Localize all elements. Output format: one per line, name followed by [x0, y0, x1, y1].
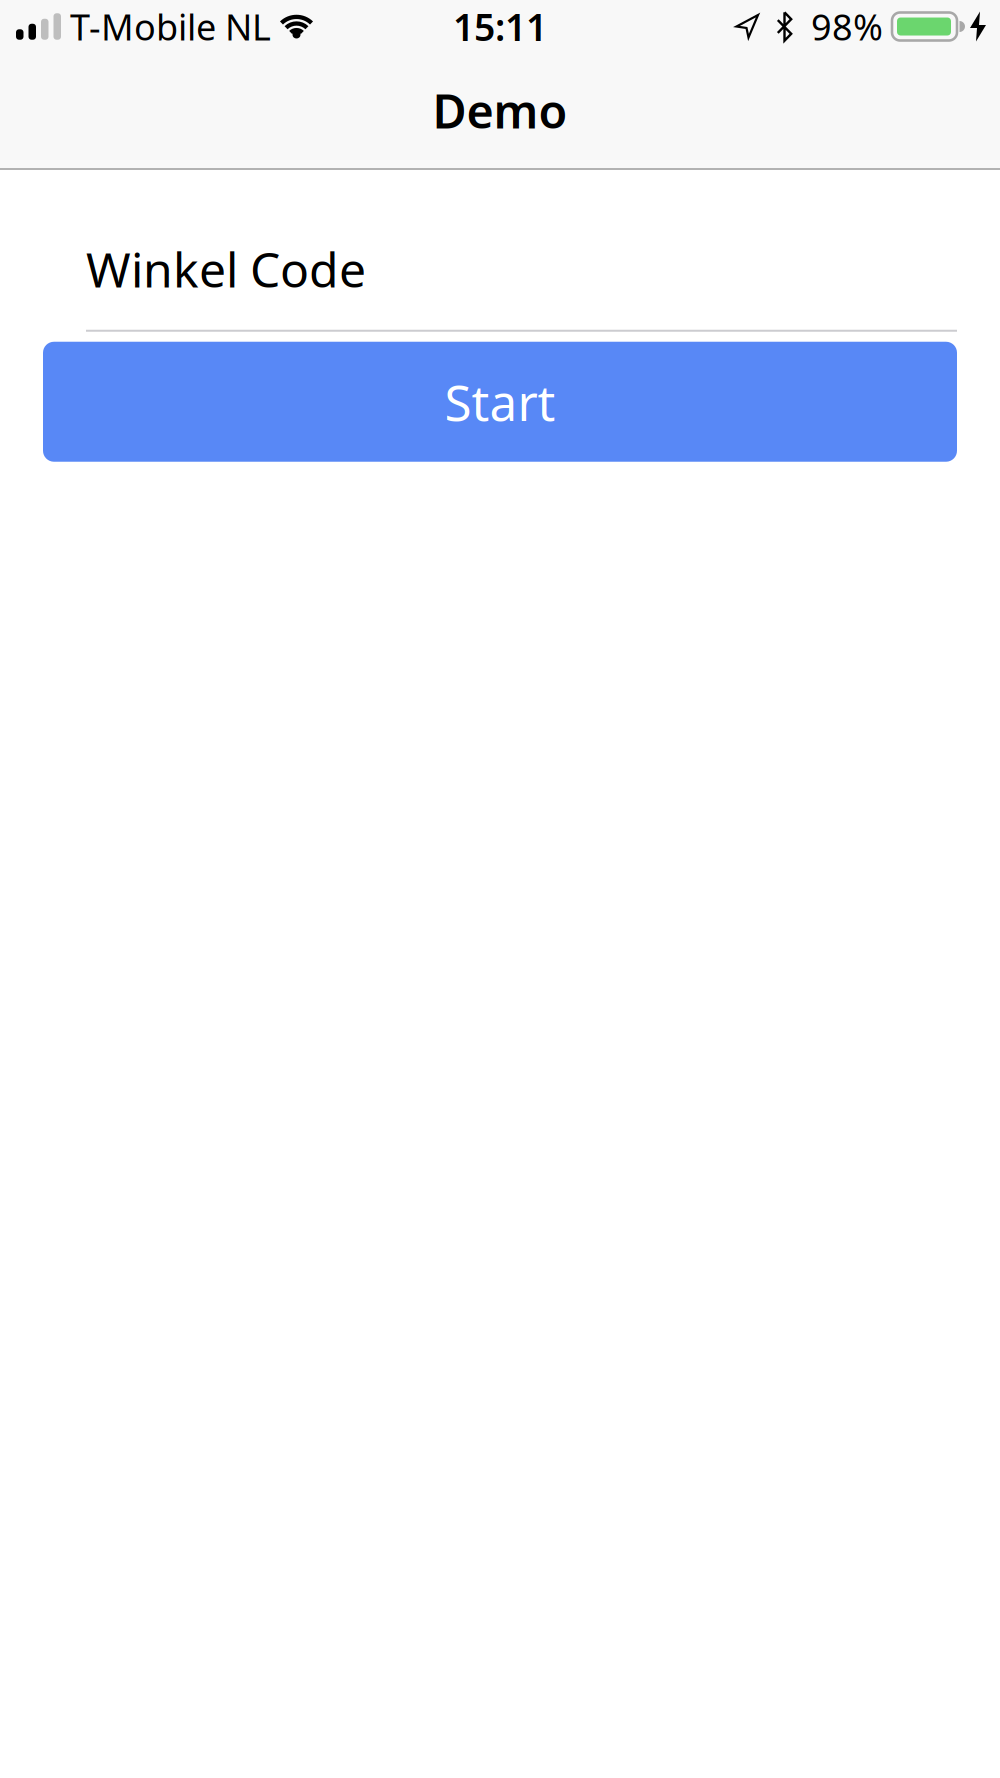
- button[interactable]: Start: [43, 342, 957, 462]
- staticText: 98%: [811, 3, 883, 50]
- staticText: Winkel Code: [86, 237, 366, 301]
- staticText: T-Mobile NL: [70, 3, 271, 50]
- staticText: Demo: [432, 79, 567, 141]
- staticText: 15:11: [453, 2, 547, 51]
- staticText: Start: [444, 369, 555, 434]
- button[interactable]: Winkel Code: [0, 237, 957, 332]
